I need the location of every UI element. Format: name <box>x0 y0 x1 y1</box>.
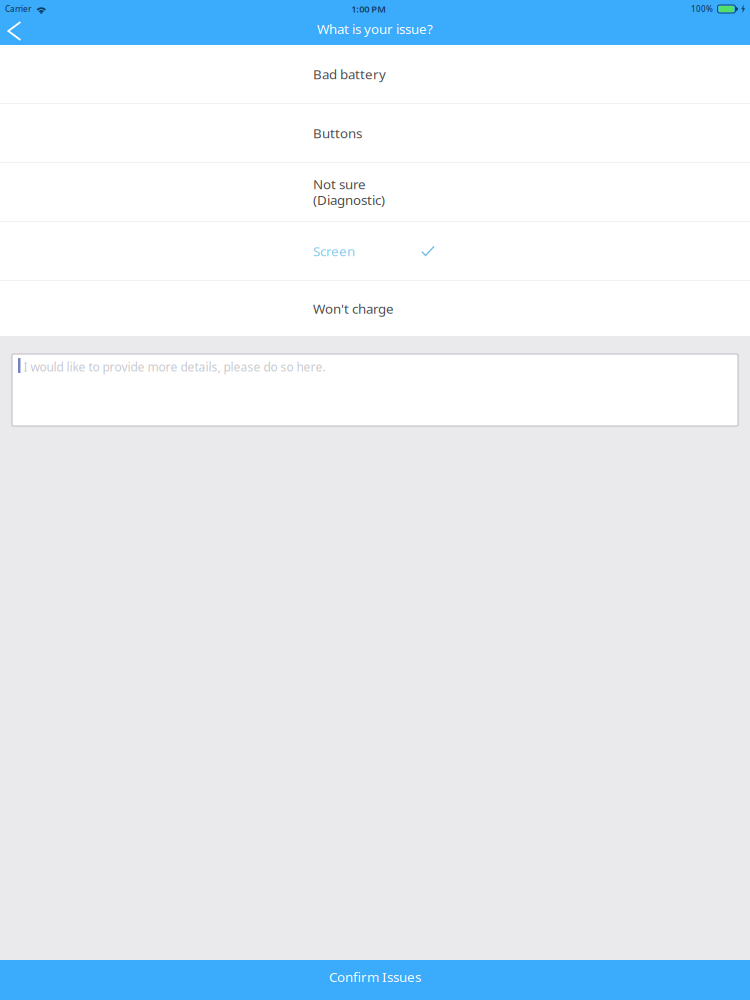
staticText: Bad battery <box>313 65 386 83</box>
button[interactable]: Bad battery <box>0 45 750 103</box>
button[interactable]: Not sure <box>0 163 750 221</box>
button[interactable]: Screen <box>0 222 750 280</box>
staticText: I would like to provide more details, pl… <box>23 359 325 375</box>
staticText: Not sure <box>313 175 366 193</box>
staticText: 1:00 PM <box>351 3 386 15</box>
staticText: Confirm Issues <box>329 968 421 986</box>
button[interactable]: I would like to provide more details, pl… <box>0 336 750 426</box>
staticText: (Diagnostic) <box>313 191 385 209</box>
staticText: Carrier <box>5 4 31 14</box>
staticText: What is your issue? <box>317 20 433 38</box>
staticText: Buttons <box>313 124 362 142</box>
staticText: 100% <box>691 4 713 14</box>
staticText: Screen <box>313 242 355 260</box>
button[interactable]: Won't charge <box>0 281 750 336</box>
button[interactable]: Confirm Issues <box>0 960 750 1000</box>
button[interactable]: Back <box>0 18 35 45</box>
staticText: Won't charge <box>313 300 394 317</box>
button[interactable]: Buttons <box>0 104 750 162</box>
